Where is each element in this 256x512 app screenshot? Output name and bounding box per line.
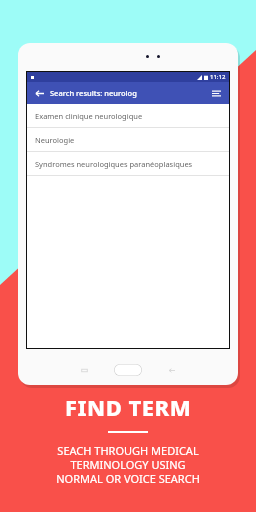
- staticText: 11:12: [210, 73, 226, 81]
- button[interactable]: Back: [168, 368, 175, 373]
- button[interactable]: Home: [114, 364, 142, 376]
- staticText: Search results: neurolog: [50, 88, 137, 98]
- staticText: Examen clinique neurologique: [35, 111, 143, 121]
- button[interactable]: Examen clinique neurologique: [27, 104, 229, 128]
- staticText: FIND TERM: [65, 392, 192, 422]
- button[interactable]: Syndromes neurologiques paranéoplasiques: [27, 152, 229, 176]
- button[interactable]: Recents: [81, 368, 88, 373]
- button[interactable]: Back: [32, 86, 46, 100]
- button[interactable]: Menu: [209, 86, 223, 100]
- staticText: SEACH THROUGH MEDICAL TERMINOLOGY USING …: [56, 443, 200, 486]
- staticText: Syndromes neurologiques paranéoplasiques: [35, 159, 193, 169]
- staticText: Neurologie: [35, 135, 75, 145]
- button[interactable]: Neurologie: [27, 128, 229, 152]
